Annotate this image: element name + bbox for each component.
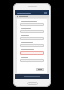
button[interactable] [36, 68, 44, 71]
button[interactable] [20, 37, 44, 40]
button[interactable]: Home [27, 82, 38, 85]
button[interactable] [20, 44, 44, 47]
button[interactable] [20, 23, 44, 26]
button[interactable]: Menu [15, 10, 49, 15]
button[interactable] [20, 30, 44, 33]
button[interactable] [20, 59, 44, 62]
button[interactable] [20, 51, 44, 55]
